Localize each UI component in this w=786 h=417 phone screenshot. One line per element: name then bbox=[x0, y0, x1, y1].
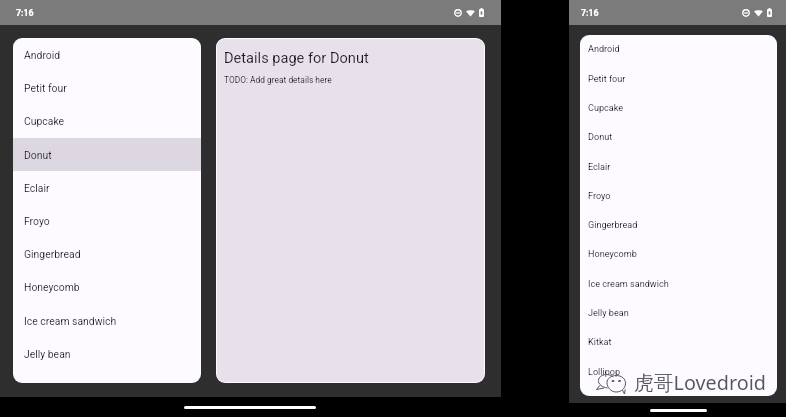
staticText: Honeycomb bbox=[24, 281, 80, 293]
staticText: Honeycomb bbox=[588, 249, 637, 260]
staticText: Petit four bbox=[588, 74, 626, 85]
button[interactable]: Ice cream sandwich bbox=[13, 304, 201, 337]
staticText: 虎哥Lovedroid bbox=[634, 369, 766, 393]
staticText: Details page for Donut bbox=[224, 49, 369, 66]
staticText: Gingerbread bbox=[24, 248, 81, 260]
staticText: Ice cream sandwich bbox=[588, 279, 669, 290]
button[interactable]: Petit four bbox=[13, 71, 201, 104]
staticText: Lollipop bbox=[588, 367, 621, 378]
staticText: Petit four bbox=[24, 82, 67, 94]
button[interactable]: Ice cream sandwich bbox=[580, 269, 777, 299]
staticText: Donut bbox=[588, 132, 613, 143]
button[interactable]: Froyo bbox=[13, 204, 201, 237]
staticText: Android bbox=[588, 44, 620, 55]
staticText: Froyo bbox=[588, 191, 611, 202]
button[interactable]: Petit four bbox=[580, 64, 777, 94]
button[interactable]: Kitkat bbox=[580, 328, 777, 357]
staticText: Froyo bbox=[24, 215, 50, 227]
staticText: Ice cream sandwich bbox=[24, 315, 117, 327]
staticText: Jelly bean bbox=[24, 348, 71, 360]
staticText: TODO: Add great details here bbox=[224, 75, 332, 85]
staticText: Donut bbox=[24, 149, 52, 161]
staticText: 7:16 bbox=[16, 8, 34, 18]
button[interactable]: Android bbox=[580, 35, 777, 64]
staticText: Eclair bbox=[588, 162, 611, 173]
button[interactable]: Donut bbox=[580, 123, 777, 152]
button[interactable]: Gingerbread bbox=[580, 211, 777, 240]
button[interactable]: Jelly bean bbox=[580, 299, 777, 328]
button[interactable]: Donut bbox=[13, 138, 201, 171]
staticText: 7:16 bbox=[581, 8, 599, 18]
button[interactable]: Honeycomb bbox=[13, 270, 201, 304]
button[interactable]: Jelly bean bbox=[13, 337, 201, 370]
button[interactable]: Cupcake bbox=[580, 94, 777, 123]
button[interactable]: Cupcake bbox=[13, 104, 201, 138]
staticText: Gingerbread bbox=[588, 220, 638, 231]
button[interactable]: Eclair bbox=[580, 152, 777, 182]
button[interactable]: Android bbox=[13, 38, 201, 71]
button[interactable]: Honeycomb bbox=[580, 240, 777, 269]
staticText: Android bbox=[24, 49, 61, 61]
staticText: Kitkat bbox=[588, 337, 612, 348]
button[interactable]: Froyo bbox=[580, 182, 777, 211]
button[interactable]: Eclair bbox=[13, 171, 201, 204]
staticText: Cupcake bbox=[24, 115, 65, 127]
staticText: Jelly bean bbox=[588, 308, 629, 319]
button[interactable]: Lollipop bbox=[580, 357, 777, 387]
staticText: Cupcake bbox=[588, 103, 624, 114]
staticText: Eclair bbox=[24, 182, 50, 194]
button[interactable]: Gingerbread bbox=[13, 237, 201, 270]
